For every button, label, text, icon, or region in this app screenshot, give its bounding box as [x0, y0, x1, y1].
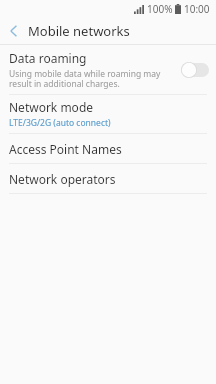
staticText: Access Point Names: [9, 141, 122, 157]
staticText: Network mode: [9, 99, 94, 115]
button[interactable]: Network mode: [0, 95, 216, 133]
staticText: Using mobile data while roaming may resu…: [9, 68, 175, 90]
button[interactable]: Data roaming, off: [181, 62, 209, 78]
staticText: 100%: [147, 2, 173, 16]
staticText: Network operators: [9, 171, 116, 187]
button[interactable]: Network operators: [0, 164, 216, 193]
button[interactable]: Navigate up: [0, 18, 26, 44]
button[interactable]: Access Point Names: [0, 134, 216, 163]
staticText: 10:00: [184, 2, 210, 16]
staticText: Mobile networks: [28, 22, 130, 40]
staticText: Data roaming: [9, 50, 87, 66]
button[interactable]: Data roaming: [0, 45, 216, 94]
staticText: LTE/3G/2G (auto connect): [9, 117, 111, 129]
